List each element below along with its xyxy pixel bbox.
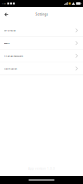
staticText: Change Password (4, 54, 23, 57)
button[interactable]: Sports (0, 37, 83, 50)
staticText: Notification (4, 67, 18, 70)
staticText: Sports (4, 41, 10, 45)
button[interactable]: Back (0, 7, 12, 22)
staticText: My Groups (4, 29, 16, 32)
button[interactable]: Notification (0, 62, 83, 75)
button[interactable]: My Groups (0, 24, 83, 37)
button[interactable]: Change Password (0, 50, 83, 62)
staticText: App version 1.0.0 (28, 166, 55, 170)
staticText: Settings (35, 13, 47, 16)
staticText: 1:06 (2, 2, 6, 5)
